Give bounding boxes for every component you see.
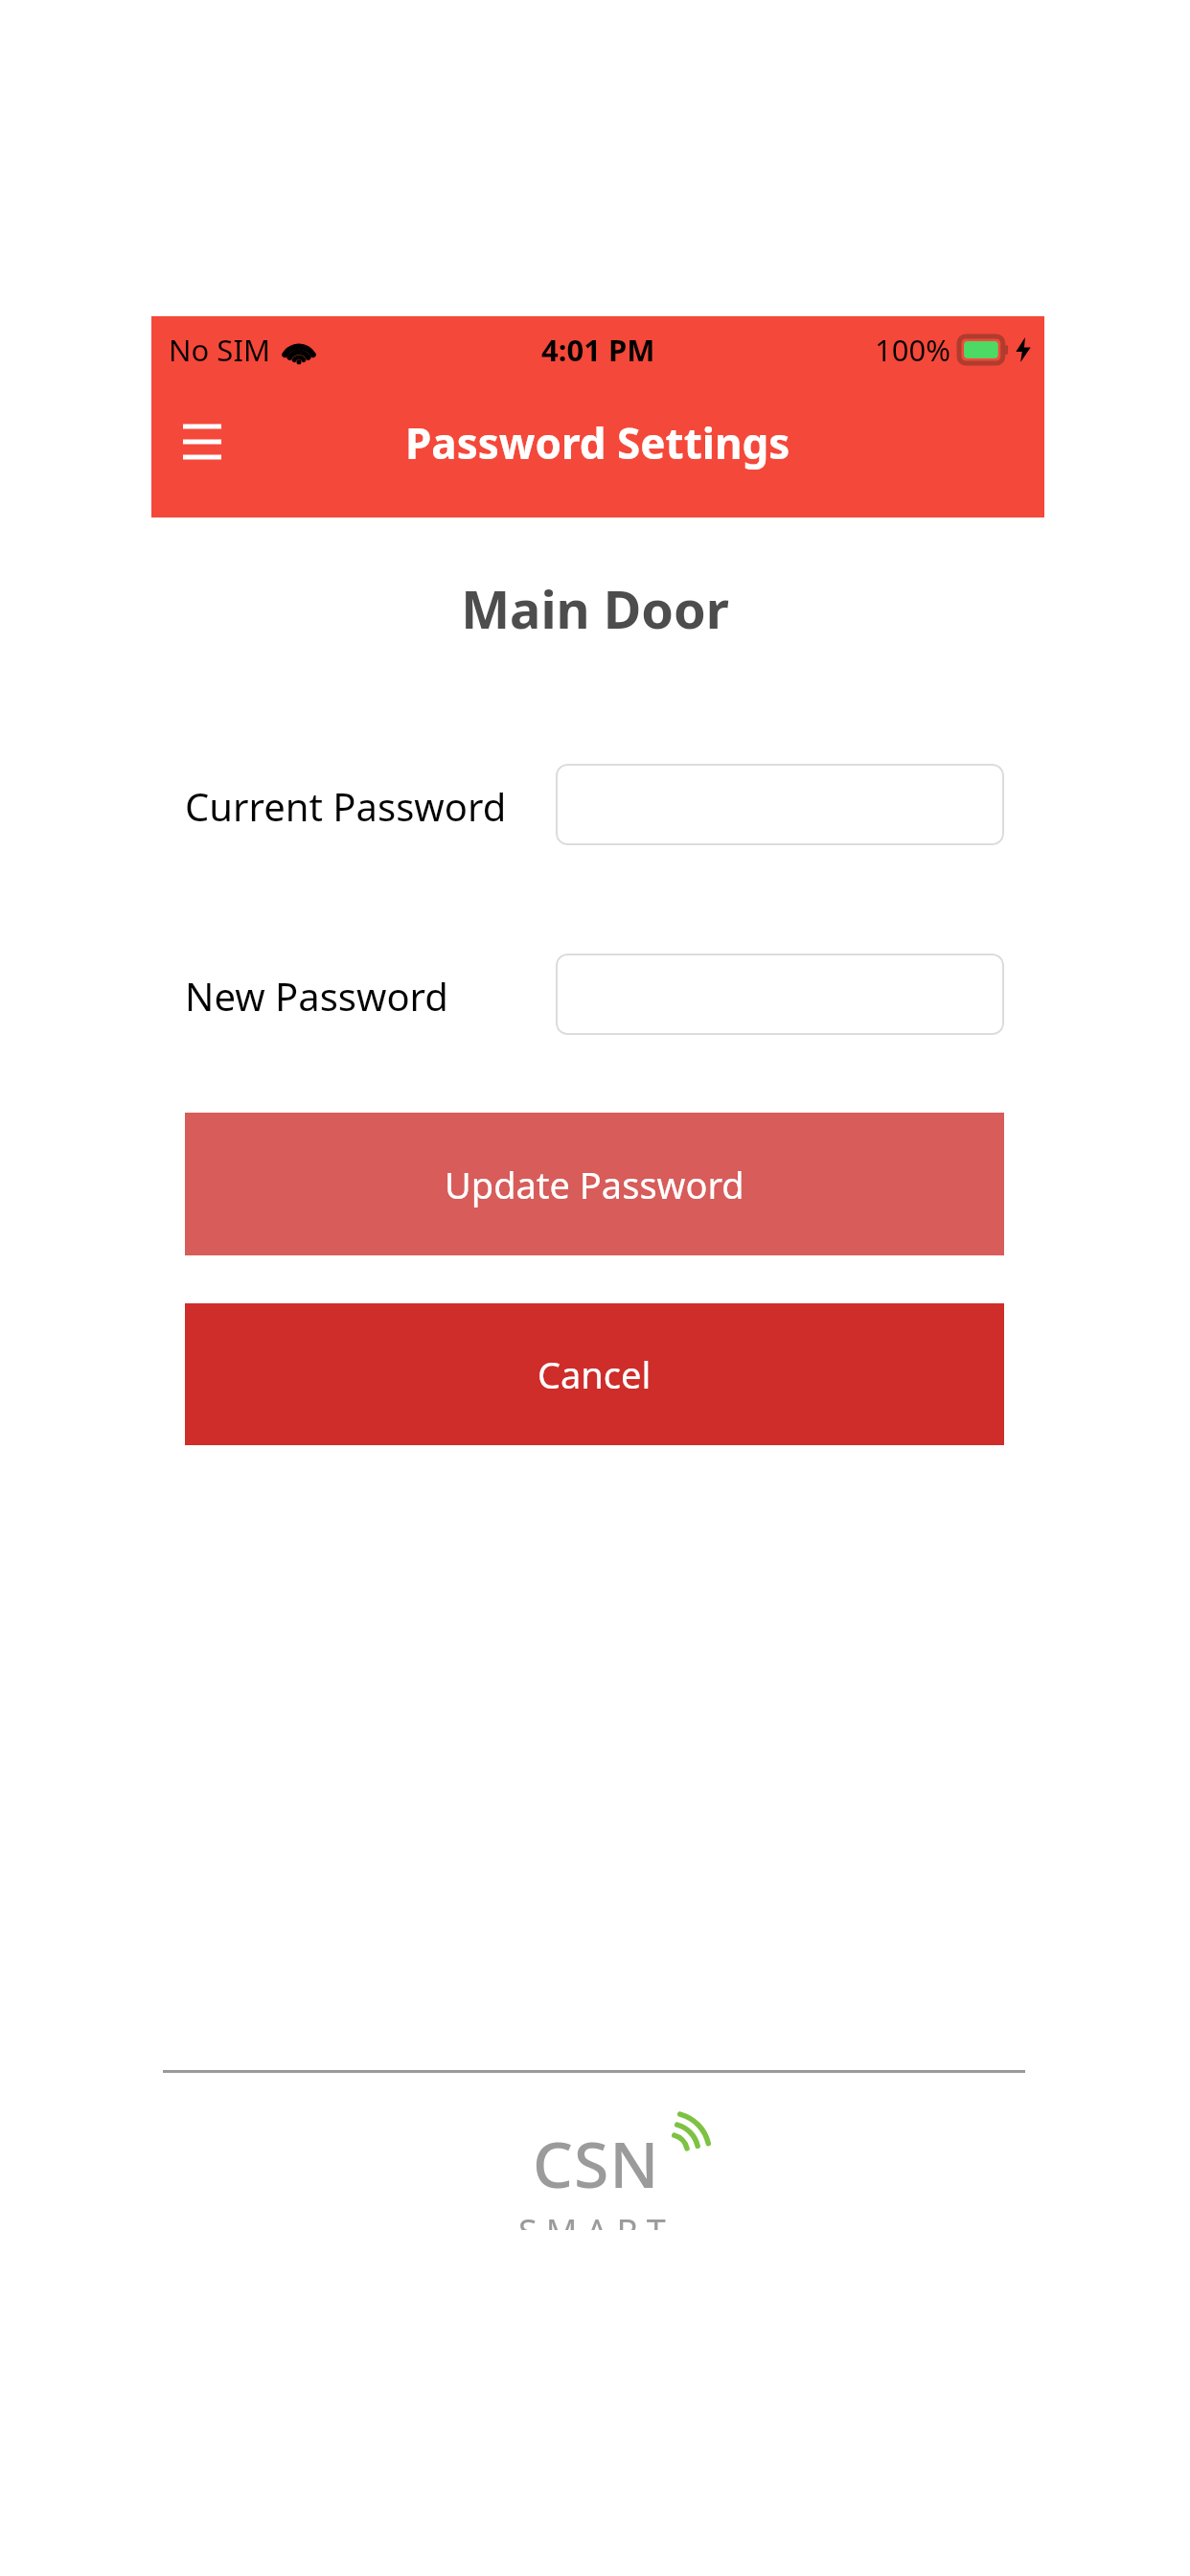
- button[interactable]: Update Password: [185, 1113, 1004, 1255]
- staticText: Update Password: [445, 1160, 744, 1209]
- staticText: CSN: [533, 2120, 660, 2206]
- staticText: No SIM: [169, 330, 271, 370]
- button[interactable]: Cancel: [185, 1303, 1004, 1445]
- staticText: 100%: [875, 330, 950, 370]
- button[interactable]: Menu: [165, 405, 240, 480]
- staticText: New Password: [185, 970, 448, 1022]
- staticText: Main Door: [0, 573, 1190, 644]
- staticText: Password Settings: [405, 414, 790, 471]
- staticText: Cancel: [538, 1349, 652, 1399]
- staticText: Current Password: [185, 780, 507, 832]
- button[interactable]: [556, 954, 1004, 1035]
- staticText: 4:01 PM: [541, 330, 655, 370]
- staticText: SMART: [518, 2208, 675, 2230]
- button[interactable]: [556, 764, 1004, 845]
